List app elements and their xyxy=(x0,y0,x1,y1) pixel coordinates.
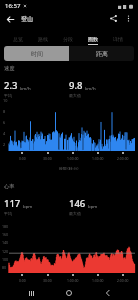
staticText: 2:00:00 xyxy=(117,278,129,283)
staticText: km/h xyxy=(85,85,96,91)
button[interactable]: 路线 xyxy=(30,32,55,46)
button[interactable]: More options xyxy=(121,11,136,26)
button[interactable]: 详情 xyxy=(105,32,130,46)
staticText: 登山 xyxy=(21,15,34,23)
button[interactable]: Back xyxy=(3,12,17,26)
staticText: km/h xyxy=(20,85,31,91)
staticText: 160 xyxy=(2,232,9,237)
staticText: 時間 (時:分) xyxy=(59,166,79,171)
button[interactable]: 分段 xyxy=(55,32,80,46)
staticText: 1:00:00 xyxy=(67,278,79,283)
staticText: 120 xyxy=(2,249,9,254)
button[interactable]: Back xyxy=(100,286,116,300)
staticText: 180 xyxy=(2,224,9,229)
staticText: 2:00:00 xyxy=(117,156,129,161)
staticText: 0:00 xyxy=(19,156,26,161)
button[interactable]: Share xyxy=(106,11,121,26)
staticText: 平均 xyxy=(4,93,12,98)
staticText: 最大值 xyxy=(69,93,81,98)
staticText: 16:57 xyxy=(5,2,21,10)
staticText: 30:00 xyxy=(43,278,52,283)
staticText: bpm xyxy=(23,203,33,209)
staticText: 1:00:00 xyxy=(67,156,79,161)
button[interactable]: 距离 xyxy=(69,46,134,61)
button[interactable]: 圈数 xyxy=(80,32,105,46)
staticText: 时间 xyxy=(31,50,43,58)
staticText: 117 xyxy=(4,197,21,210)
staticText: 0:00 xyxy=(19,278,26,283)
staticText: 80 xyxy=(2,265,7,270)
staticText: 1:30:00 xyxy=(92,156,104,161)
staticText: 140 xyxy=(2,240,9,245)
staticText: 平均 xyxy=(4,211,12,216)
button[interactable]: 总览 xyxy=(5,32,30,46)
button[interactable]: Home xyxy=(61,286,77,300)
staticText: 30:00 xyxy=(43,156,52,161)
staticText: 路线 xyxy=(38,36,48,42)
staticText: 9.8 xyxy=(69,79,83,92)
staticText: 圈数 xyxy=(88,36,98,42)
staticText: 146 xyxy=(69,197,86,210)
staticText: 2 xyxy=(3,142,6,147)
staticText: 详情 xyxy=(113,36,123,42)
staticText: 距离 xyxy=(96,50,108,58)
staticText: 最大值 xyxy=(69,211,81,216)
staticText: bpm xyxy=(88,203,98,209)
staticText: 速度 xyxy=(4,65,15,72)
staticText: 总览 xyxy=(13,36,23,42)
button[interactable]: Recents xyxy=(23,286,39,300)
staticText: 分段 xyxy=(63,36,73,42)
button[interactable]: 时间 xyxy=(4,46,69,61)
staticText: 4 xyxy=(3,131,6,136)
staticText: 1:30:00 xyxy=(92,278,104,283)
staticText: 100 xyxy=(2,257,9,262)
staticText: 心率 xyxy=(4,183,15,190)
staticText: 10 xyxy=(3,98,8,103)
staticText: 6 xyxy=(3,120,6,125)
staticText: 2.3 xyxy=(4,79,18,92)
staticText: 8 xyxy=(3,109,6,114)
